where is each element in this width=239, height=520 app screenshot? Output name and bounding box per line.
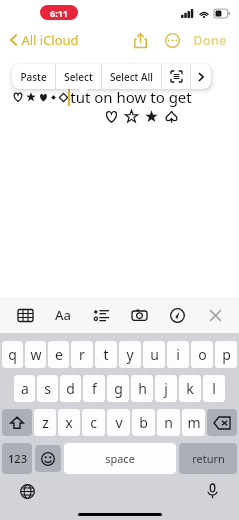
button[interactable]: h (131, 375, 153, 402)
button[interactable]: return (179, 443, 237, 474)
staticText: r (79, 345, 85, 364)
staticText: q (8, 345, 17, 364)
button[interactable]: x (58, 409, 80, 436)
staticText: n (164, 413, 173, 432)
staticText: j (164, 379, 168, 398)
staticText: o (198, 345, 207, 364)
staticText: t (103, 345, 109, 364)
staticText: All iCloud (21, 31, 79, 49)
button[interactable]: n (157, 409, 180, 436)
staticText: l (212, 379, 216, 398)
button[interactable]: All iCloud (8, 27, 81, 53)
button[interactable]: u (143, 341, 165, 368)
button[interactable]: Camera (126, 302, 152, 328)
button[interactable]: Change keyboard (14, 478, 40, 504)
staticText: v (115, 413, 123, 432)
staticText: z (42, 413, 49, 432)
button[interactable]: o (191, 341, 213, 368)
staticText: i (176, 345, 180, 364)
staticText: g (114, 379, 123, 398)
button[interactable]: w (25, 341, 46, 368)
staticText: Select (64, 70, 93, 84)
staticText: m (187, 413, 201, 432)
staticText: Paste (20, 70, 47, 84)
button[interactable]: Share (127, 27, 153, 53)
staticText: p (222, 345, 231, 364)
button[interactable]: Paste (12, 64, 55, 89)
button[interactable]: d (60, 375, 81, 402)
button[interactable]: 123 (2, 443, 32, 474)
button[interactable]: Markup (164, 302, 190, 328)
button[interactable]: s (37, 375, 58, 402)
button[interactable]: e (48, 341, 69, 368)
staticText: d (66, 379, 75, 398)
button[interactable]: a (14, 375, 35, 402)
staticText: Select All (110, 70, 153, 84)
button[interactable]: Shift (2, 409, 32, 436)
button[interactable]: q (2, 341, 23, 368)
button[interactable]: space (64, 443, 176, 474)
button[interactable]: Checklist (88, 302, 114, 328)
button[interactable]: t (95, 341, 117, 368)
staticText: u (150, 345, 159, 364)
button[interactable]: Table (12, 302, 38, 328)
staticText: Done (193, 31, 227, 49)
button[interactable]: i (167, 341, 189, 368)
button[interactable]: c (82, 409, 105, 436)
button[interactable]: Emoji (35, 445, 61, 472)
button[interactable]: f (83, 375, 105, 402)
button[interactable]: m (182, 409, 205, 436)
staticText: a (21, 379, 29, 398)
staticText: y (126, 345, 134, 364)
staticText: b (139, 413, 148, 432)
staticText: k (186, 379, 194, 398)
staticText: space (105, 451, 135, 466)
button[interactable]: g (107, 375, 129, 402)
staticText: s (44, 379, 51, 398)
button[interactable]: l (203, 375, 225, 402)
button[interactable]: Close keyboard (202, 302, 228, 328)
staticText: x (65, 413, 73, 432)
button[interactable]: Select (56, 64, 101, 89)
staticText: c (90, 413, 97, 432)
staticText: tut on how to get (70, 87, 192, 107)
staticText: f (92, 379, 97, 398)
button[interactable]: Text format (50, 302, 76, 328)
button[interactable]: v (107, 409, 130, 436)
staticText: Aa (55, 306, 71, 324)
button[interactable]: Dictation (199, 478, 225, 504)
button[interactable]: k (179, 375, 201, 402)
button[interactable]: Scan text (162, 64, 190, 89)
staticText: return (192, 451, 225, 466)
button[interactable]: y (119, 341, 141, 368)
button[interactable]: Done (189, 27, 231, 53)
button[interactable]: Select All (102, 64, 161, 89)
button[interactable]: Backspace (207, 409, 237, 436)
staticText: 6:11 (50, 7, 68, 19)
button[interactable]: r (71, 341, 93, 368)
staticText: e (55, 345, 63, 364)
staticText: 123 (8, 451, 27, 466)
staticText: h (138, 379, 147, 398)
button[interactable]: b (132, 409, 155, 436)
button[interactable]: p (215, 341, 237, 368)
button[interactable]: j (155, 375, 177, 402)
staticText: w (30, 345, 42, 364)
button[interactable]: z (34, 409, 56, 436)
button[interactable]: More (191, 64, 211, 89)
button[interactable]: More options (159, 27, 185, 53)
